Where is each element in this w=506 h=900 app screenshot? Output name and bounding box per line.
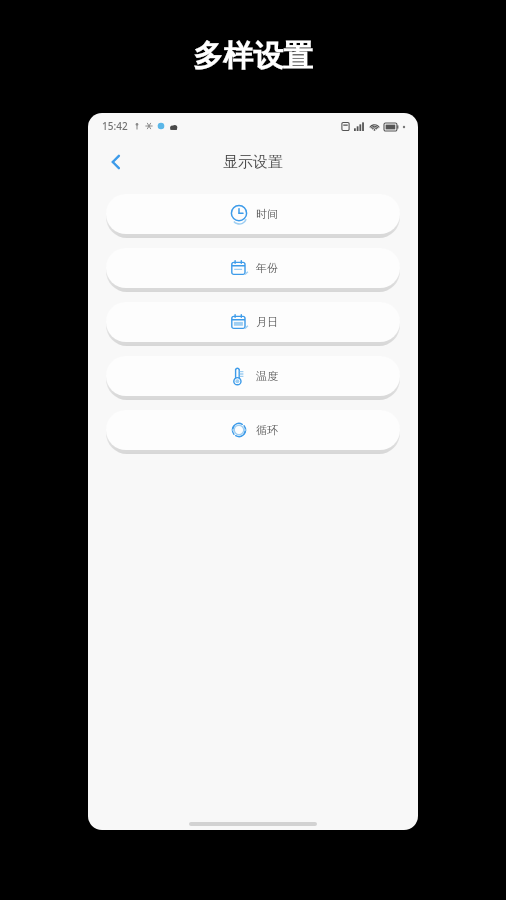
staticText: 多样设置 xyxy=(193,37,313,75)
staticText: 显示设置 xyxy=(223,153,283,172)
staticText: 时间 xyxy=(256,207,278,221)
button[interactable]: 时间 xyxy=(106,194,400,234)
staticText: 温度 xyxy=(256,369,278,383)
staticText: 15:42 xyxy=(102,119,128,133)
button[interactable]: 循环 xyxy=(106,410,400,450)
button[interactable]: 月日 xyxy=(106,302,400,342)
button[interactable]: 年份 xyxy=(106,248,400,288)
button[interactable]: 温度 xyxy=(106,356,400,396)
staticText: 循环 xyxy=(256,423,278,437)
button[interactable]: Back xyxy=(96,142,136,182)
staticText: 月日 xyxy=(256,315,278,329)
staticText: 年份 xyxy=(256,261,278,275)
